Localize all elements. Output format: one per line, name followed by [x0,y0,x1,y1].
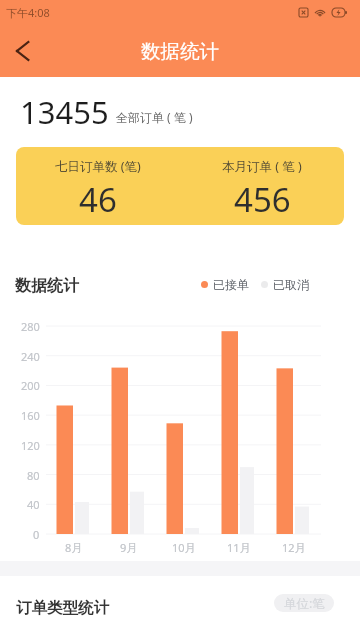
staticText: 数据统计 [15,276,79,296]
staticText: 11月 [227,540,251,555]
staticText: 240 [21,349,40,364]
staticText: 下午4:08 [6,5,50,20]
staticText: 80 [27,468,40,483]
staticText: 120 [21,438,40,453]
button[interactable]: 已接单 [201,277,249,292]
staticText: 已取消 [273,277,309,292]
staticText: 七日订单数 (笔) [55,158,141,175]
staticText: 8月 [65,540,83,555]
staticText: 单位:笔 [284,595,325,612]
staticText: 12月 [282,540,306,555]
staticText: 280 [21,319,40,334]
staticText: 200 [21,378,40,393]
button[interactable]: 七日订单数 (笔) [16,147,180,225]
staticText: 已接单 [213,277,249,292]
staticText: 456 [234,177,291,222]
button[interactable]: Back [0,29,44,73]
staticText: 数据统计 [141,39,219,64]
staticText: 订单类型统计 [16,598,109,618]
staticText: 全部订单 ( 笔 ) [116,109,193,125]
staticText: 10月 [172,540,196,555]
staticText: 160 [21,408,40,423]
button[interactable]: 本月订单 ( 笔 ) [180,147,344,225]
staticText: 46 [79,177,117,222]
staticText: 本月订单 ( 笔 ) [222,158,302,175]
button[interactable]: 已取消 [261,277,309,292]
staticText: 0 [33,527,40,542]
staticText: 9月 [120,540,138,555]
staticText: 40 [27,497,40,512]
staticText: 13455 [20,91,109,133]
